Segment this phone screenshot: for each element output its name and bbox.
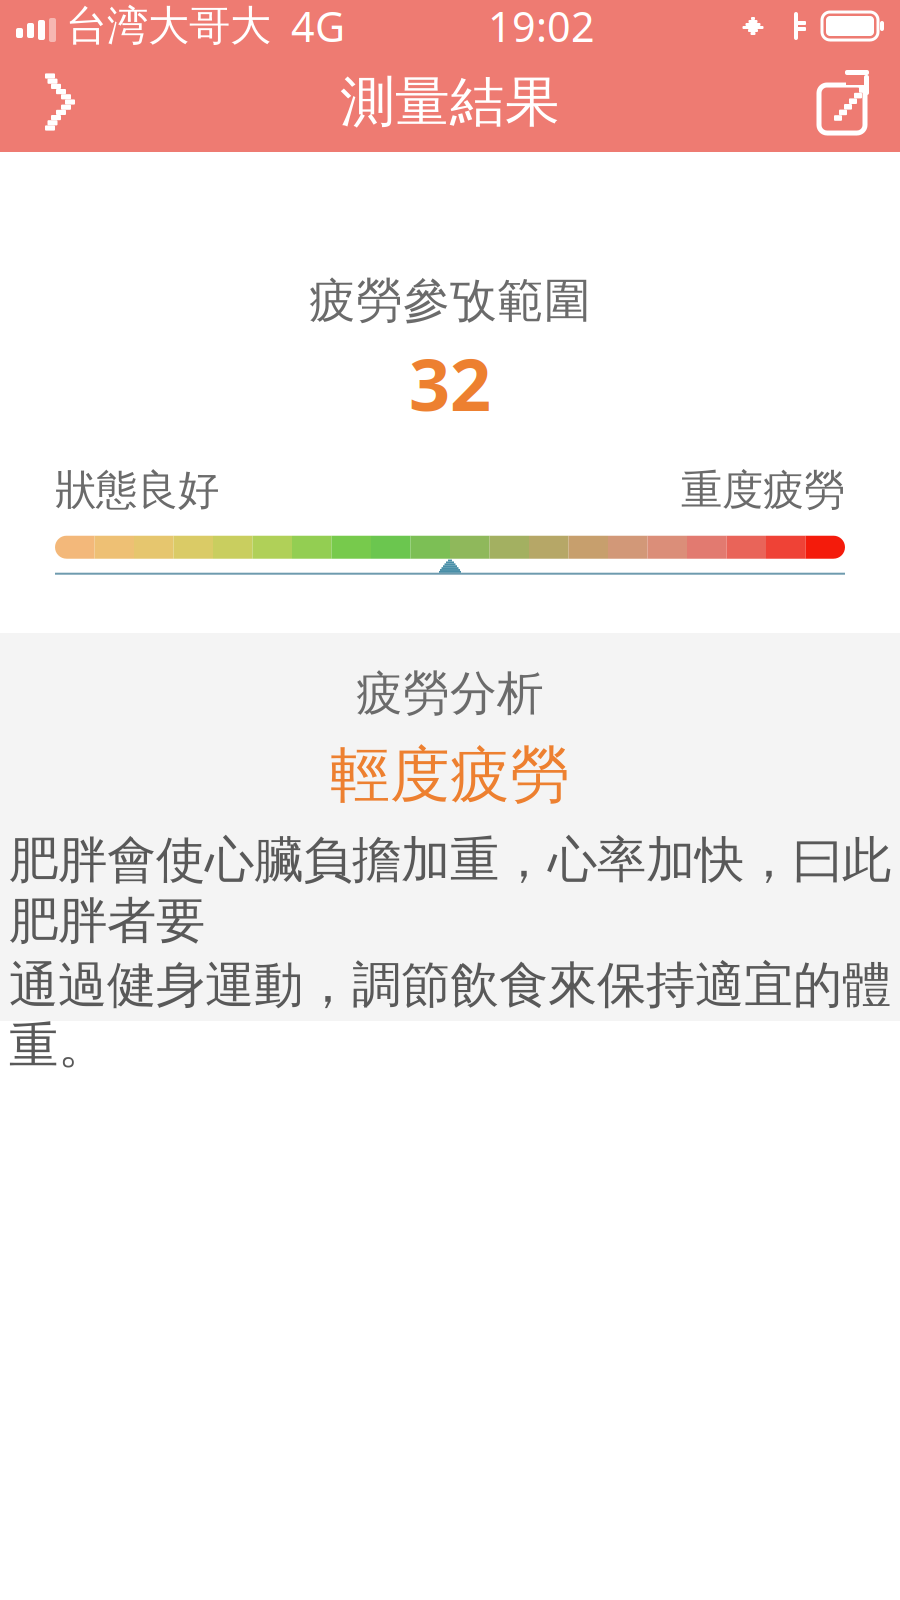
staticText: 19:02 bbox=[488, 0, 595, 53]
staticText: 肥胖會使心臟負擔加重，心率加快，曰此肥胖者要 bbox=[9, 830, 891, 951]
staticText: 4G bbox=[291, 0, 345, 53]
staticText: 疲勞參攷範圍 bbox=[309, 272, 591, 329]
staticText: 輕度疲勞 bbox=[330, 738, 570, 812]
staticText: 狀態良好 bbox=[55, 465, 219, 516]
staticText: 32 bbox=[409, 335, 491, 431]
button[interactable]: Back bbox=[10, 52, 106, 152]
button[interactable]: Share bbox=[794, 52, 890, 152]
staticText: 台湾大哥大 bbox=[66, 1, 271, 51]
staticText: 通過健身運動，調節飲食來保持適宜的體重。 bbox=[9, 955, 891, 1076]
staticText: 測量結果 bbox=[340, 68, 560, 135]
staticText: 疲勞分析 bbox=[356, 665, 544, 722]
staticText: 重度疲勞 bbox=[681, 465, 845, 516]
